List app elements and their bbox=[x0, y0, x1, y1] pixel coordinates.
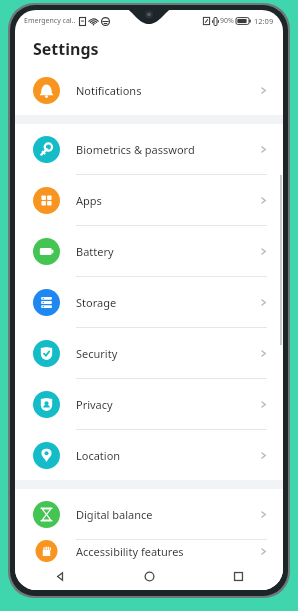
button[interactable]: Digital balance bbox=[15, 489, 283, 540]
staticText: Accessibility features bbox=[76, 544, 258, 559]
staticText: 12:09 bbox=[254, 16, 274, 26]
staticText: Privacy bbox=[76, 397, 258, 412]
button[interactable]: Home bbox=[105, 562, 194, 590]
staticText: Battery bbox=[76, 244, 258, 259]
button[interactable]: Privacy bbox=[15, 379, 283, 430]
staticText: Settings bbox=[33, 38, 99, 60]
button[interactable]: Back bbox=[15, 562, 105, 590]
button[interactable]: Accessibility features bbox=[15, 540, 283, 562]
button[interactable]: Storage bbox=[15, 277, 283, 328]
staticText: Location bbox=[76, 448, 258, 463]
button[interactable]: Biometrics & password bbox=[15, 124, 283, 175]
button[interactable]: Notifications bbox=[15, 65, 283, 115]
button[interactable]: Apps bbox=[15, 175, 283, 226]
staticText: Security bbox=[76, 346, 258, 361]
staticText: Biometrics & password bbox=[76, 142, 258, 157]
button[interactable]: Security bbox=[15, 328, 283, 379]
staticText: Digital balance bbox=[76, 507, 258, 522]
staticText: Emergency cal.. bbox=[24, 16, 76, 26]
button[interactable]: Battery bbox=[15, 226, 283, 277]
staticText: Apps bbox=[76, 193, 258, 208]
staticText: Storage bbox=[76, 295, 258, 310]
staticText: Notifications bbox=[76, 83, 258, 98]
staticText: 90% bbox=[220, 16, 234, 26]
button[interactable]: Location bbox=[15, 430, 283, 480]
button[interactable]: Recent apps bbox=[194, 562, 283, 590]
